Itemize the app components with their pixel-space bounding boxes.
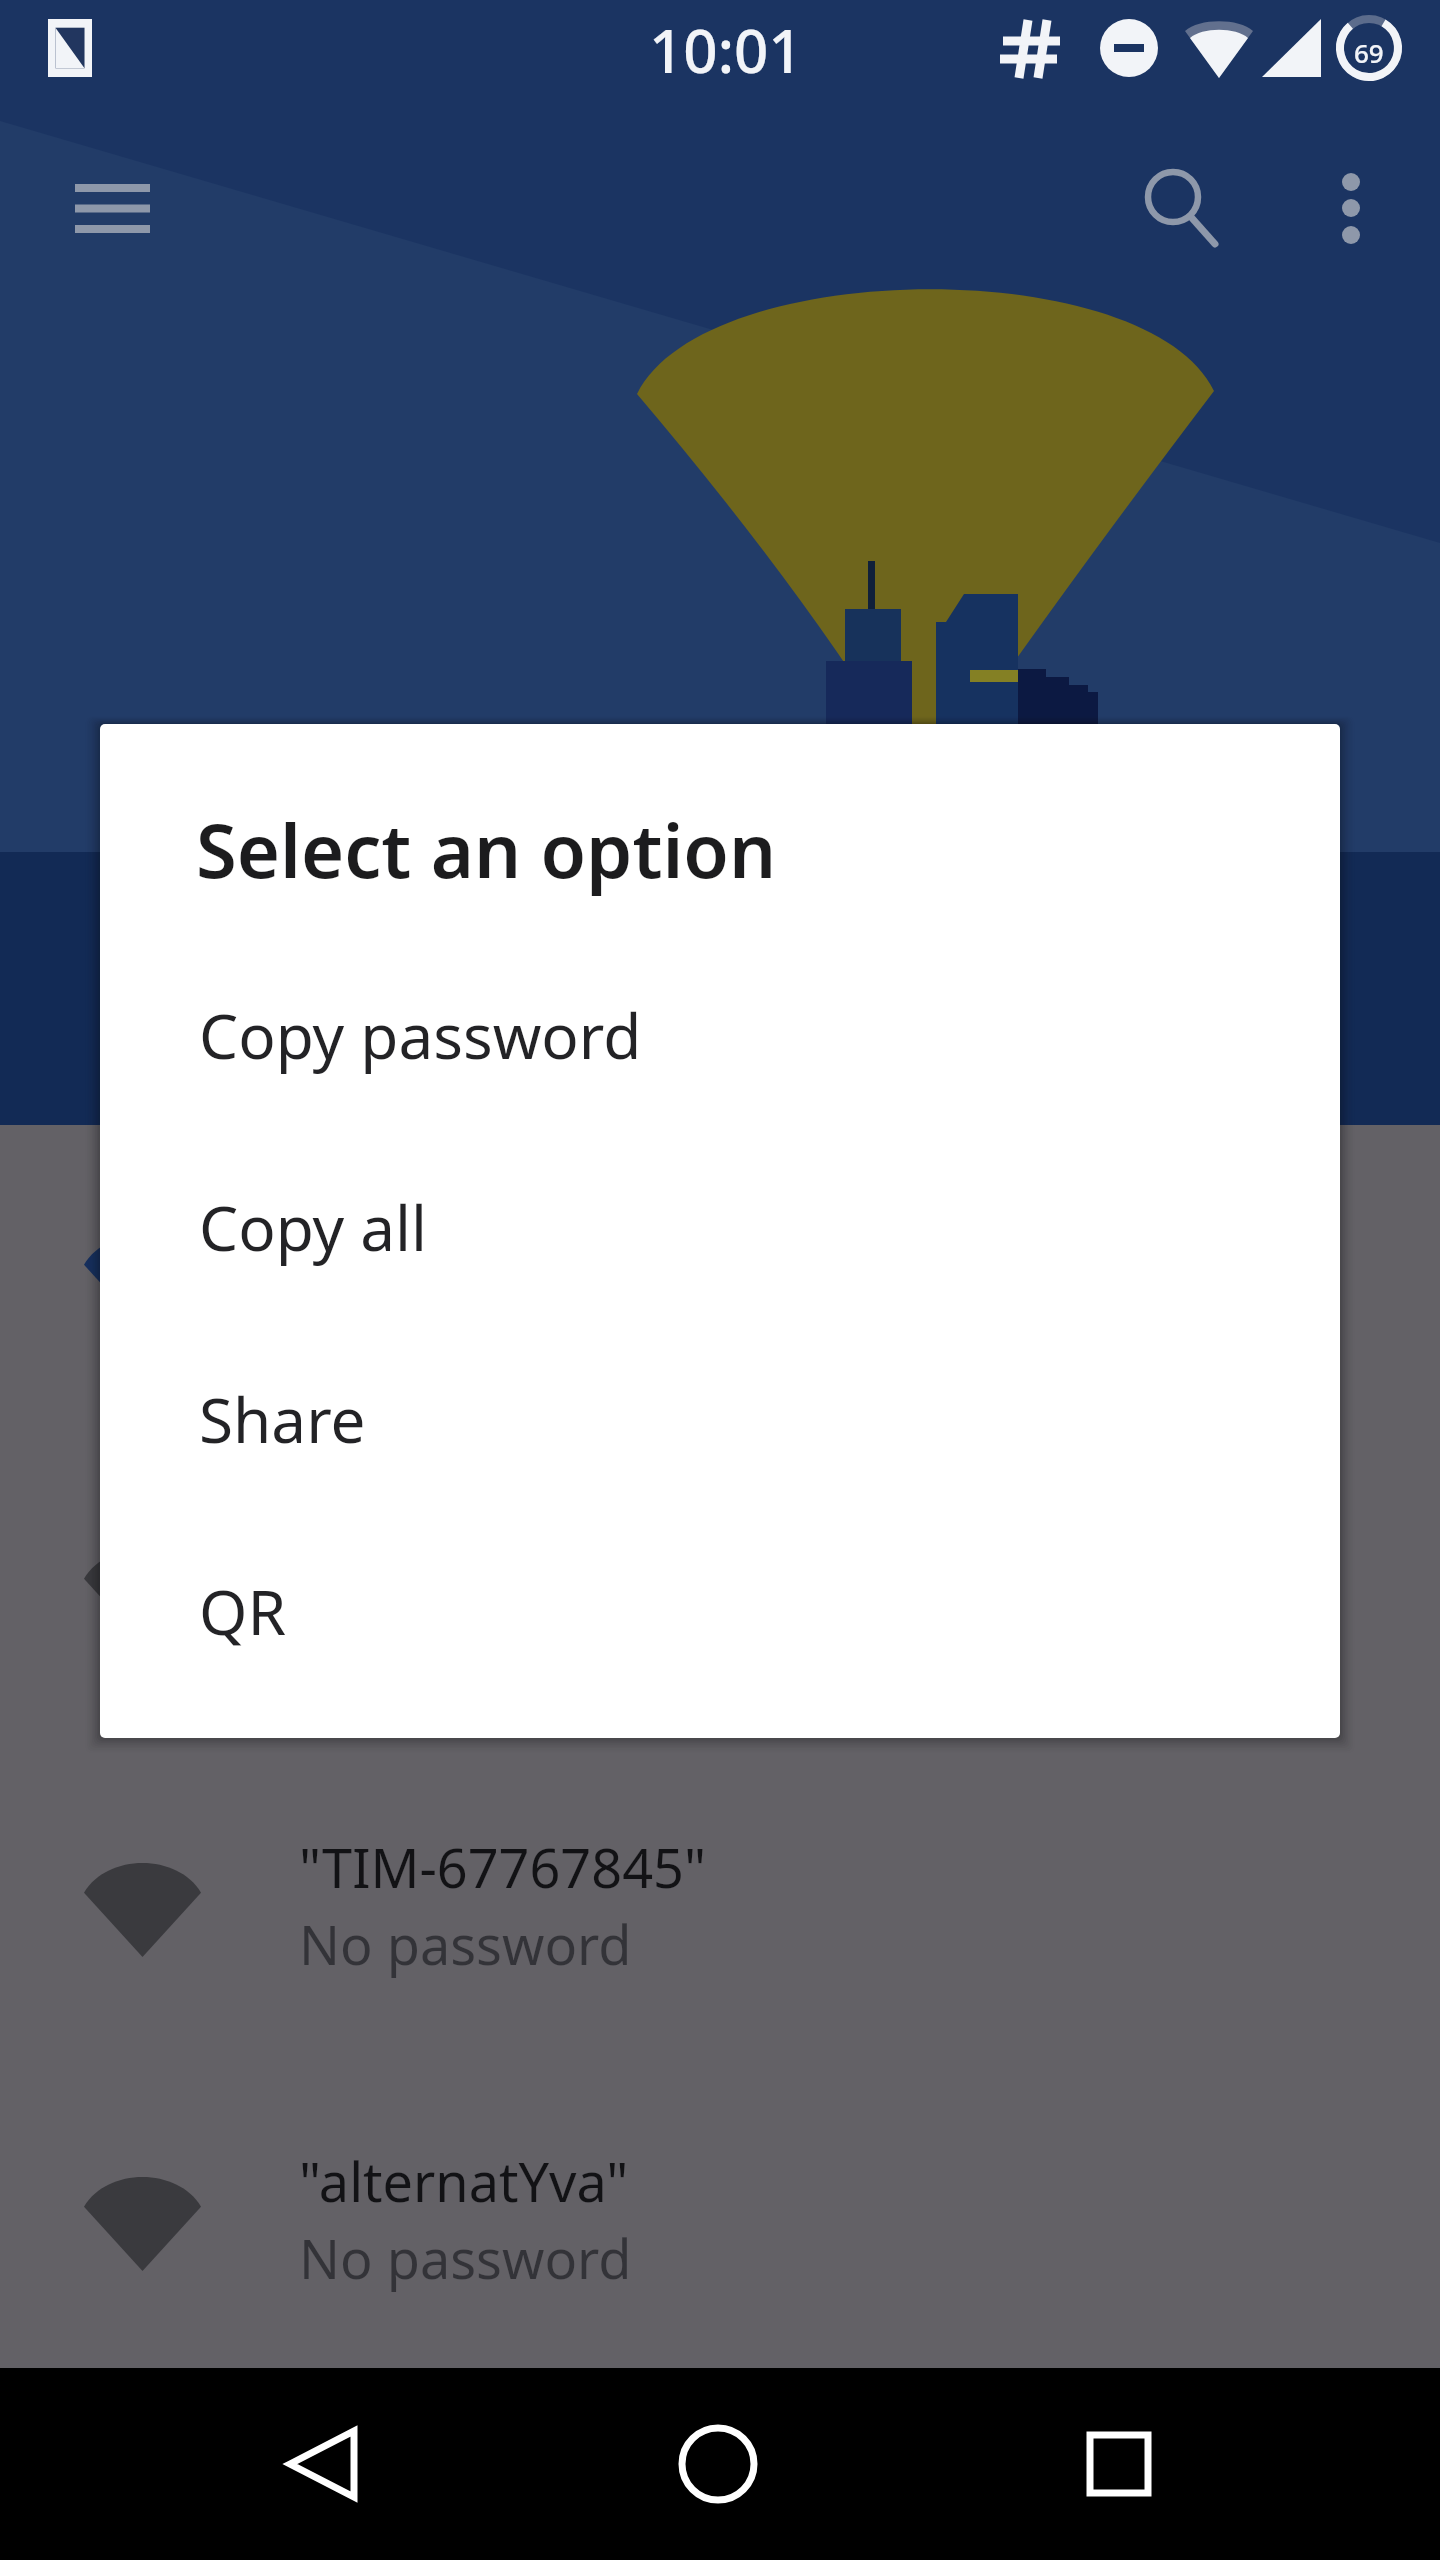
button[interactable]: Copy all: [100, 1131, 1340, 1323]
button[interactable]: "TIM-67767845": [0, 1770, 1440, 2084]
staticText: Copy password: [199, 993, 642, 1077]
button[interactable]: Copy password: [100, 939, 1340, 1131]
staticText: 69: [1354, 35, 1384, 70]
button[interactable]: More options: [1286, 143, 1416, 273]
button[interactable]: Recent apps: [1019, 2399, 1219, 2529]
staticText: No password: [299, 1907, 632, 1981]
button[interactable]: QR: [100, 1515, 1340, 1707]
button[interactable]: Search: [1108, 132, 1238, 262]
button[interactable]: Back: [222, 2399, 422, 2529]
button[interactable]: Open navigation menu: [40, 140, 170, 270]
staticText: "alternatYva": [299, 2144, 629, 2218]
staticText: Copy all: [199, 1185, 428, 1269]
staticText: No password: [299, 2221, 632, 2295]
button[interactable]: Home: [618, 2399, 818, 2529]
staticText: Share: [199, 1377, 366, 1461]
staticText: "Vodafone-12345": [299, 1202, 759, 1276]
staticText: QR: [199, 1569, 286, 1653]
staticText: Select an option: [196, 799, 777, 900]
button[interactable]: "Vodafone-12345": [0, 1142, 1440, 1456]
button[interactable]: "FASTWEB-ABC": [0, 1456, 1440, 1770]
staticText: 10:01: [649, 9, 803, 91]
staticText: "TIM-67767845": [299, 1830, 706, 1904]
button[interactable]: "alternatYva": [0, 2084, 1440, 2368]
button[interactable]: Share: [100, 1323, 1340, 1515]
